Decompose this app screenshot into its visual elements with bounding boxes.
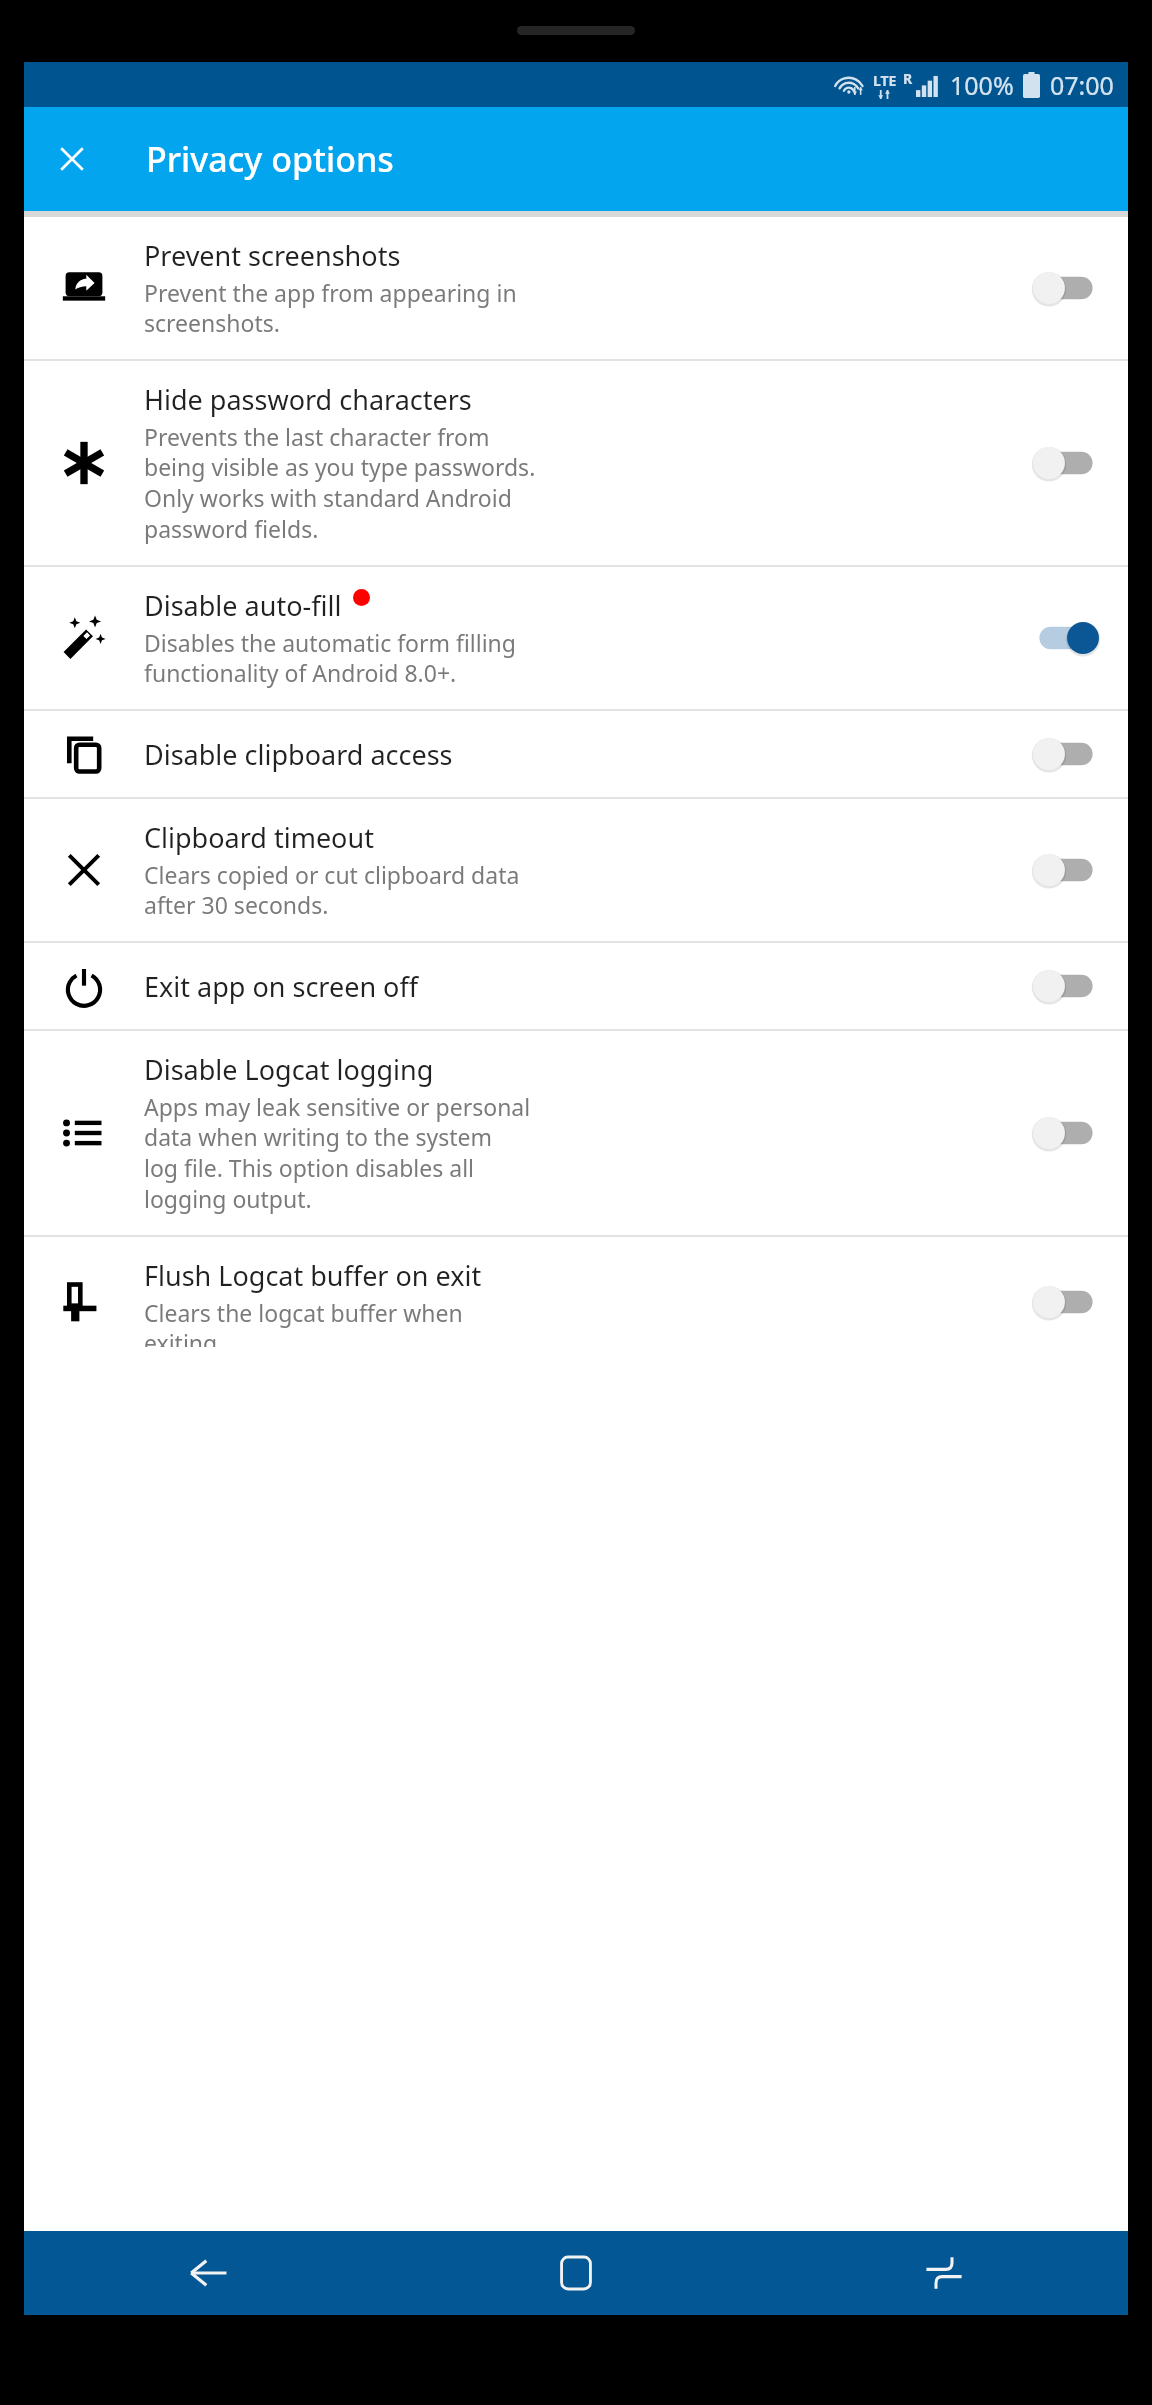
staticText: R	[903, 69, 913, 88]
staticText: Exit app on screen off	[144, 968, 419, 1005]
staticText: LTE	[873, 71, 897, 90]
button[interactable]: Hide password characters	[24, 361, 1128, 565]
staticText: 100%	[950, 68, 1014, 102]
staticText: Disables the automatic form filling func…	[144, 627, 516, 689]
staticText: Disable clipboard access	[144, 736, 453, 773]
staticText: Disable Logcat logging	[144, 1051, 434, 1088]
staticText: Apps may leak sensitive or personal data…	[144, 1091, 531, 1215]
staticText: Clears the logcat buffer when exiting.	[144, 1297, 463, 1347]
button[interactable]: Home	[392, 2231, 760, 2315]
button[interactable]	[1031, 965, 1101, 1007]
button[interactable]	[1031, 733, 1101, 775]
button[interactable]: Back	[24, 2231, 392, 2315]
button[interactable]	[1031, 849, 1101, 891]
button[interactable]: Recent apps	[760, 2231, 1128, 2315]
button[interactable]: Prevent screenshots	[24, 217, 1128, 359]
staticText: Prevents the last character from being v…	[144, 421, 536, 545]
staticText: Clipboard timeout	[144, 819, 374, 856]
button[interactable]: Disable auto-fill	[24, 567, 1128, 709]
staticText: Hide password characters	[144, 381, 472, 418]
button[interactable]: Clipboard timeout	[24, 799, 1128, 941]
staticText: Disable auto-fill	[144, 587, 342, 624]
staticText: Privacy options	[146, 136, 394, 182]
button[interactable]	[1031, 1281, 1101, 1323]
button[interactable]	[1031, 617, 1101, 659]
staticText: Prevent the app from appearing in screen…	[144, 277, 517, 339]
button[interactable]: Exit app on screen off	[24, 943, 1128, 1029]
button[interactable]	[1031, 1112, 1101, 1154]
button[interactable]	[1031, 267, 1101, 309]
button[interactable]: Disable clipboard access	[24, 711, 1128, 797]
staticText: Prevent screenshots	[144, 237, 401, 274]
staticText: Flush Logcat buffer on exit	[144, 1257, 482, 1294]
staticText: 07:00	[1050, 68, 1114, 102]
staticText: Clears copied or cut clipboard data afte…	[144, 859, 520, 921]
button[interactable]: Disable Logcat logging	[24, 1031, 1128, 1235]
button[interactable]: Close	[24, 111, 120, 207]
button[interactable]	[1031, 442, 1101, 484]
button[interactable]: Flush Logcat buffer on exit	[24, 1237, 1128, 1367]
